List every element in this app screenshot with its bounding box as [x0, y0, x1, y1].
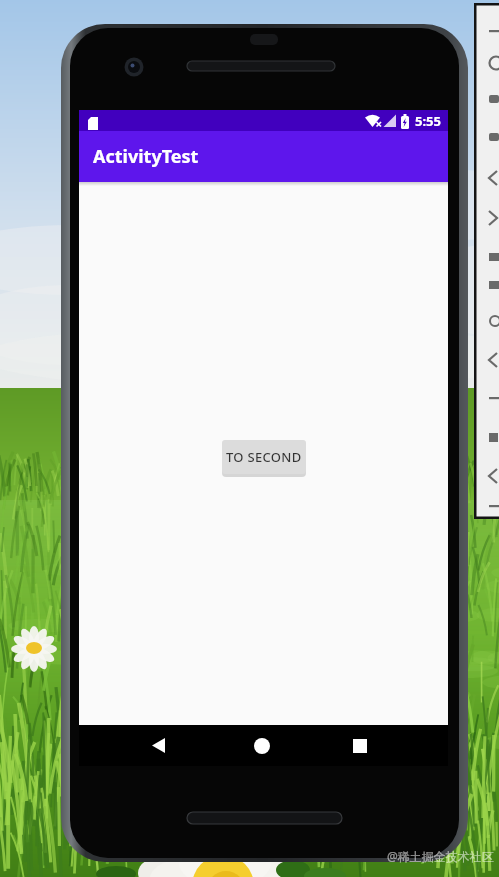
button[interactable]: TO SECOND: [222, 440, 306, 474]
staticText: @稀土掘金技术社区: [387, 848, 494, 864]
button[interactable]: [145, 732, 172, 759]
staticText: 5:55: [415, 112, 441, 130]
button[interactable]: [346, 732, 373, 759]
button[interactable]: [248, 732, 275, 759]
button[interactable]: [474, 3, 499, 519]
staticText: TO SECOND: [226, 448, 302, 466]
staticText: ActivityTest: [93, 144, 199, 169]
